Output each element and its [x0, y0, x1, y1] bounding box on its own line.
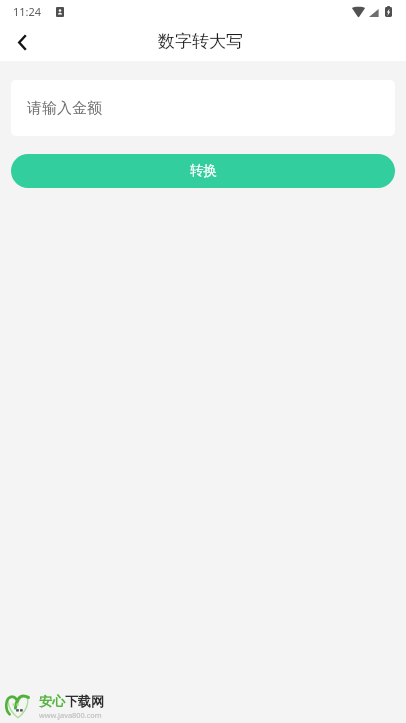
button[interactable]: 请输入金额	[11, 80, 395, 136]
staticText: 11:24	[13, 4, 42, 19]
staticText: 数字转大写	[158, 31, 243, 52]
button[interactable]: Back	[0, 20, 44, 64]
staticText: 下载网	[65, 693, 104, 709]
staticText: 转换	[190, 162, 217, 179]
staticText: 请输入金额	[27, 99, 102, 118]
staticText: 安心	[39, 693, 65, 709]
button[interactable]: 转换	[11, 154, 395, 188]
staticText: www.java800.com	[39, 710, 102, 720]
